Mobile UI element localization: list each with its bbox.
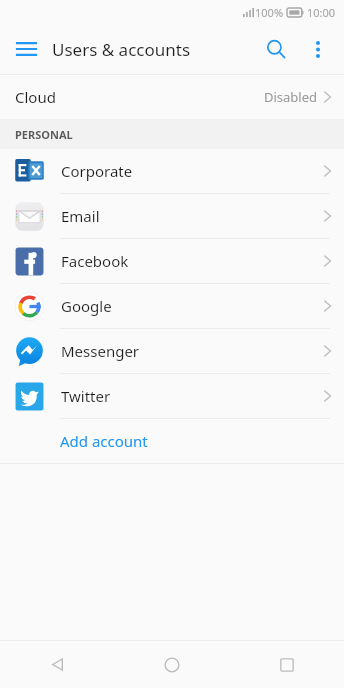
staticText: Cloud [15, 87, 56, 107]
staticText: PERSONAL [15, 127, 73, 142]
button[interactable]: Recent apps [229, 641, 344, 688]
button[interactable]: Navigation menu [8, 31, 44, 67]
button[interactable]: Add account [0, 419, 344, 463]
staticText: Disabled [264, 88, 318, 106]
button[interactable]: Twitter [0, 374, 344, 418]
button[interactable]: Email [0, 194, 344, 238]
staticText: 100% [255, 5, 284, 20]
staticText: Add account [60, 431, 148, 451]
button[interactable]: Facebook [0, 239, 344, 283]
staticText: Twitter [61, 386, 111, 406]
button[interactable]: Corporate [0, 149, 344, 193]
button[interactable]: Home [114, 641, 229, 688]
staticText: Messenger [61, 341, 140, 361]
button[interactable]: Search [254, 27, 298, 71]
staticText: Facebook [61, 251, 129, 271]
button[interactable]: Cloud [0, 75, 344, 119]
button[interactable]: Google [0, 284, 344, 328]
staticText: Google [61, 296, 112, 316]
staticText: Users & accounts [52, 38, 191, 61]
button[interactable]: More options [298, 29, 338, 69]
staticText: Email [61, 206, 100, 226]
staticText: 10:00 [307, 5, 336, 20]
button[interactable]: Messenger [0, 329, 344, 373]
button[interactable]: Back [0, 641, 114, 688]
staticText: Corporate [61, 161, 133, 181]
